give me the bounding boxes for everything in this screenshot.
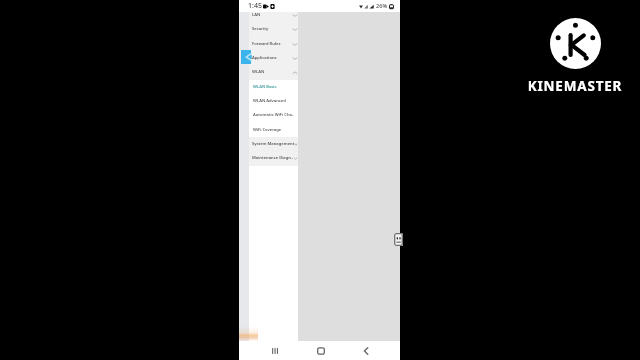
button[interactable]: WLAN [249, 65, 298, 79]
button[interactable]: Automatic WiFi Cha.. [249, 108, 298, 122]
button[interactable]: WLAN Basic [249, 80, 298, 94]
staticText: LAN [252, 12, 261, 18]
staticText: Security [252, 26, 269, 32]
staticText: 26% [376, 2, 388, 10]
button[interactable]: Maintenance Diagn.. [249, 151, 298, 165]
button[interactable]: System Management [249, 137, 298, 151]
button[interactable]: Security [249, 22, 298, 36]
staticText: Forward Rules [252, 41, 281, 47]
button[interactable]: Back [352, 341, 380, 360]
staticText: Automatic WiFi Cha.. [253, 112, 295, 118]
button[interactable]: Home [307, 341, 335, 360]
button[interactable]: Forward Rules [249, 37, 298, 51]
staticText: Maintenance Diagn.. [252, 155, 294, 161]
button[interactable]: Applications [249, 51, 298, 65]
button[interactable]: Recent apps [261, 341, 289, 360]
button[interactable]: WLAN Advanced [249, 94, 298, 108]
staticText: WiFi Coverage [253, 127, 282, 133]
staticText: Applications [252, 55, 277, 61]
staticText: WLAN [252, 69, 265, 75]
staticText: KINEMASTER [519, 77, 631, 95]
button[interactable]: LAN [249, 8, 298, 22]
button[interactable]: Floating assistant [394, 233, 403, 246]
staticText: 1:45 [248, 1, 262, 11]
staticText: WLAN Basic [253, 84, 277, 90]
button[interactable]: WiFi Coverage [249, 123, 298, 137]
staticText: WLAN Advanced [253, 98, 286, 104]
staticText: System Management [252, 141, 295, 147]
